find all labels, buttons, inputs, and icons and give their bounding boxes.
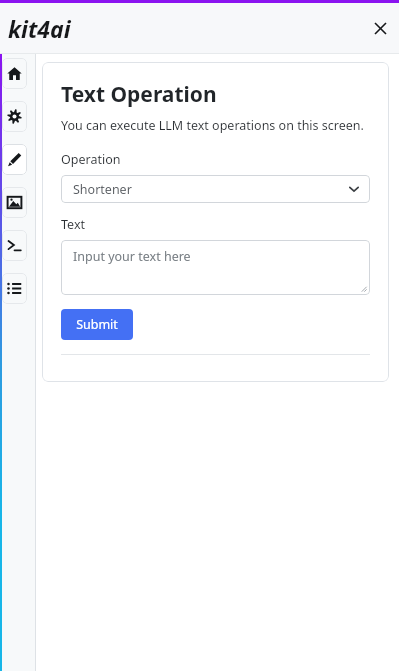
- staticText: Submit: [76, 316, 118, 333]
- button[interactable]: Input your text here: [61, 240, 370, 295]
- staticText: Input your text here: [73, 248, 191, 265]
- button[interactable]: Terminal: [2, 230, 27, 261]
- button[interactable]: Images: [2, 187, 27, 218]
- button[interactable]: Text operations: [2, 144, 27, 175]
- button[interactable]: Home: [2, 58, 27, 89]
- staticText: Text Operation: [61, 80, 217, 109]
- button[interactable]: List: [2, 273, 27, 304]
- button[interactable]: Submit: [61, 309, 133, 340]
- staticText: You can execute LLM text operations on t…: [61, 117, 364, 134]
- staticText: kit4ai: [8, 13, 71, 44]
- staticText: Text: [61, 216, 86, 233]
- staticText: Shortener: [73, 181, 132, 198]
- button[interactable]: Close: [368, 16, 392, 40]
- button[interactable]: Shortener: [61, 175, 370, 203]
- staticText: Operation: [61, 151, 121, 168]
- button[interactable]: Settings: [2, 101, 27, 132]
